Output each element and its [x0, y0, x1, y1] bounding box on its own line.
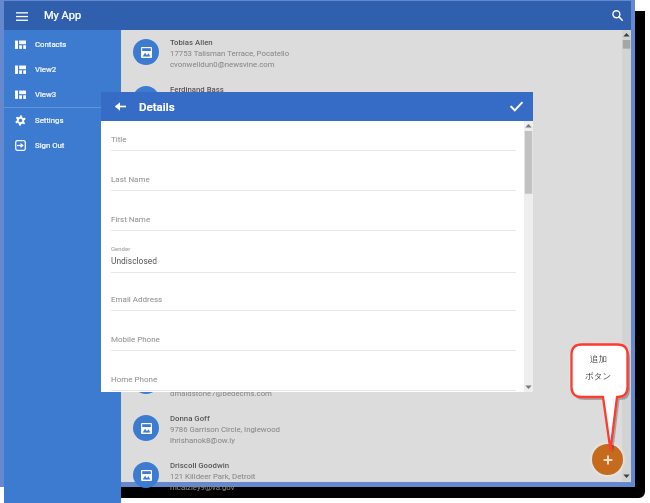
button[interactable]: Search [604, 1, 631, 30]
button[interactable]: Ferdinand Bass [121, 77, 505, 124]
staticText: rkolin6@discovery.com [170, 342, 251, 351]
button[interactable]: Tobias Allen [121, 30, 505, 77]
button[interactable]: Nora Dunn [121, 265, 505, 312]
staticText: ボタン [585, 371, 612, 382]
button[interactable]: Settings [4, 108, 121, 133]
staticText: Donna Goff [170, 414, 210, 423]
staticText: dmaldstone7@bedecms.com [170, 389, 272, 398]
staticText: Last Name [111, 175, 150, 184]
staticText: Contacts [35, 40, 67, 49]
button[interactable]: Open navigation drawer [4, 1, 40, 30]
button[interactable]: View3 [4, 82, 121, 107]
staticText: View3 [35, 90, 57, 99]
staticText: cvonwelldun0@newsvine.com [170, 60, 275, 69]
button[interactable]: Donna Goff [121, 406, 505, 453]
staticText: Ferdinand Bass [170, 85, 224, 94]
button[interactable]: Last Name [111, 161, 516, 201]
staticText: Charlotte Daniel [170, 226, 226, 235]
staticText: 121 Killdeer Park, Detroit [170, 472, 256, 481]
button[interactable]: Contacts [4, 32, 121, 57]
staticText: Settings [35, 116, 64, 125]
staticText: mcaizley9@va.gov [170, 483, 235, 492]
button[interactable]: Driscoll Goodwin [121, 453, 505, 500]
button[interactable]: View2 [4, 57, 121, 82]
button[interactable]: Title [111, 121, 516, 161]
button[interactable]: Gender [111, 241, 516, 281]
staticText: Details [139, 100, 175, 113]
button[interactable]: Save [499, 92, 533, 121]
staticText: 追加 [590, 354, 608, 365]
button[interactable]: First Name [111, 201, 516, 241]
staticText: Gender [111, 245, 131, 252]
staticText: 17753 Talisman Terrace, Pocatello [170, 49, 290, 58]
button[interactable]: Cecil Fitzgerald [121, 312, 505, 359]
staticText: Email Address [111, 295, 163, 304]
button[interactable]: Tyler Bell [121, 124, 505, 171]
button[interactable]: Sign Out [4, 133, 121, 158]
staticText: 5 Eagle Crest Street, Dallas [170, 143, 264, 152]
staticText: bmeach1@github.io [170, 107, 240, 116]
button[interactable]: Add [592, 444, 623, 475]
button[interactable]: Email Address [111, 281, 516, 321]
staticText: Tobias Allen [170, 38, 213, 47]
staticText: 37 Anzinger Junction, Houston [170, 190, 277, 199]
button[interactable]: Helen Cohen [121, 171, 505, 218]
button[interactable]: Gordon Fox [121, 359, 505, 406]
staticText: View2 [35, 65, 57, 74]
staticText: Undisclosed [111, 256, 157, 266]
button[interactable]: Mobile Phone [111, 321, 516, 361]
staticText: Title [111, 135, 127, 144]
staticText: My App [44, 9, 82, 22]
button[interactable]: Back [101, 92, 139, 121]
staticText: Home Phone [111, 375, 158, 384]
button[interactable]: Charlotte Daniel [121, 218, 505, 265]
staticText: Sign Out [35, 141, 65, 150]
button[interactable]: Home Phone [111, 361, 516, 392]
staticText: 9786 Garrison Circle, Inglewood [170, 425, 281, 434]
staticText: First Name [111, 215, 151, 224]
staticText: Driscoll Goodwin [170, 461, 230, 470]
staticText: Mobile Phone [111, 335, 160, 344]
staticText: lhrishanok8@ow.ly [170, 436, 235, 445]
